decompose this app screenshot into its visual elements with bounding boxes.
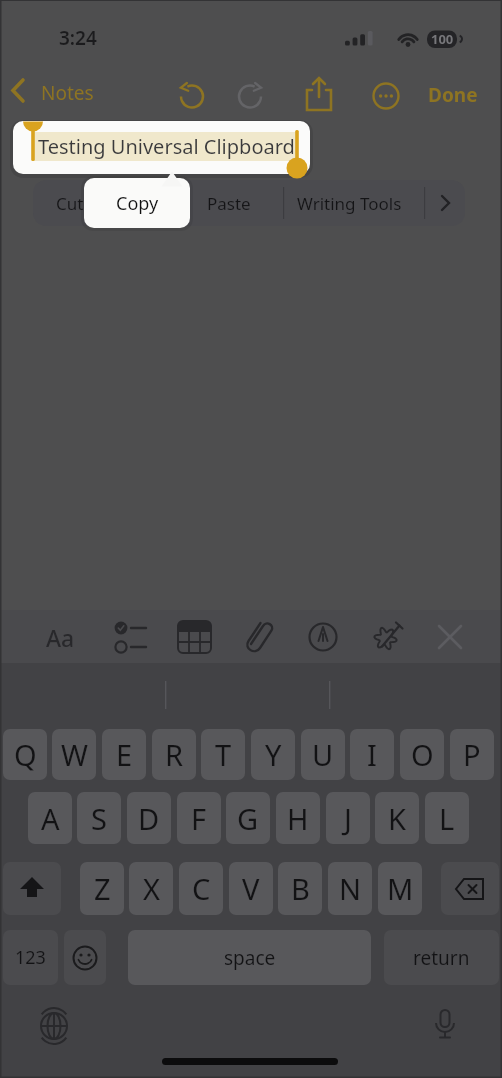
staticText: Aa [46, 622, 75, 653]
staticText: 3:24 [59, 25, 97, 51]
button[interactable] [242, 616, 282, 658]
staticText: Paste [207, 192, 251, 215]
button[interactable]: Done [415, 78, 490, 112]
button[interactable]: I [350, 729, 394, 780]
staticText: P [463, 735, 481, 774]
staticText: W [61, 735, 88, 774]
staticText: T [215, 735, 232, 774]
button[interactable] [368, 617, 408, 657]
button[interactable]: Y [251, 729, 295, 780]
button[interactable]: M [378, 862, 422, 915]
staticText: Notes [41, 80, 94, 106]
staticText: Y [265, 735, 282, 774]
staticText: return [413, 945, 470, 971]
staticText: Testing Universal Clipboard [38, 133, 295, 160]
button[interactable] [430, 182, 462, 224]
button[interactable]: J [326, 792, 370, 844]
staticText: Q [14, 735, 37, 774]
button[interactable] [106, 615, 150, 659]
button[interactable]: H [276, 792, 320, 844]
button[interactable]: G [226, 792, 270, 844]
button[interactable]: K [375, 792, 419, 844]
button[interactable] [368, 78, 404, 114]
button[interactable]: Aa [38, 619, 82, 655]
button[interactable]: space [128, 930, 371, 985]
button[interactable] [302, 76, 336, 116]
button[interactable]: Q [3, 729, 47, 780]
button[interactable]: Z [80, 862, 124, 915]
button[interactable]: R [152, 729, 196, 780]
staticText: M [387, 869, 414, 908]
button[interactable]: V [229, 862, 273, 915]
button[interactable]: O [400, 729, 444, 780]
staticText: Writing Tools [297, 192, 402, 215]
staticText: H [287, 799, 309, 838]
button[interactable] [36, 1008, 72, 1044]
staticText: E [116, 735, 133, 774]
staticText: 100 [431, 30, 454, 48]
staticText: 123 [15, 945, 46, 970]
staticText: V [242, 869, 260, 908]
button[interactable]: Notes [8, 78, 103, 114]
staticText: K [388, 799, 406, 838]
button[interactable]: W [52, 729, 96, 780]
button[interactable]: F [177, 792, 221, 844]
button[interactable]: Paste [196, 182, 262, 224]
button[interactable] [176, 619, 214, 655]
button[interactable] [434, 621, 466, 653]
staticText: Copy [116, 191, 159, 216]
button[interactable]: E [102, 729, 146, 780]
staticText: F [191, 799, 207, 838]
button[interactable] [173, 77, 211, 115]
button[interactable]: Writing Tools [290, 182, 408, 224]
button[interactable]: P [450, 729, 494, 780]
staticText: S [91, 799, 107, 838]
staticText: N [339, 869, 362, 908]
button[interactable]: B [278, 862, 322, 915]
staticText: Done [428, 82, 478, 108]
button[interactable]: L [425, 792, 469, 844]
button[interactable]: T [201, 729, 245, 780]
staticText: B [291, 869, 310, 908]
staticText: Cut [56, 192, 84, 215]
button[interactable]: N [328, 862, 372, 915]
staticText: X [143, 869, 160, 908]
staticText: G [237, 799, 259, 838]
button[interactable]: Cut [46, 182, 94, 224]
button[interactable] [428, 1006, 462, 1046]
staticText: space [224, 945, 276, 971]
staticText: O [411, 735, 434, 774]
staticText: D [138, 799, 160, 838]
button[interactable] [231, 77, 269, 115]
button[interactable]: return [384, 930, 499, 985]
staticText: U [312, 735, 334, 774]
button[interactable]: U [301, 729, 345, 780]
button[interactable]: D [127, 792, 171, 844]
button[interactable]: C [179, 862, 223, 915]
button[interactable]: 123 [3, 930, 58, 985]
staticText: A [41, 799, 60, 838]
staticText: L [439, 799, 455, 838]
staticText: I [367, 735, 377, 774]
button[interactable]: A [28, 792, 72, 844]
button[interactable] [441, 862, 499, 915]
staticText: R [165, 735, 184, 774]
button[interactable] [3, 862, 61, 915]
staticText: C [192, 869, 211, 908]
button[interactable]: S [77, 792, 121, 844]
button[interactable]: Copy [84, 178, 190, 228]
button[interactable] [64, 930, 106, 985]
button[interactable]: X [129, 862, 173, 915]
staticText: Z [94, 869, 111, 908]
button[interactable] [305, 619, 343, 657]
staticText: J [344, 799, 352, 838]
